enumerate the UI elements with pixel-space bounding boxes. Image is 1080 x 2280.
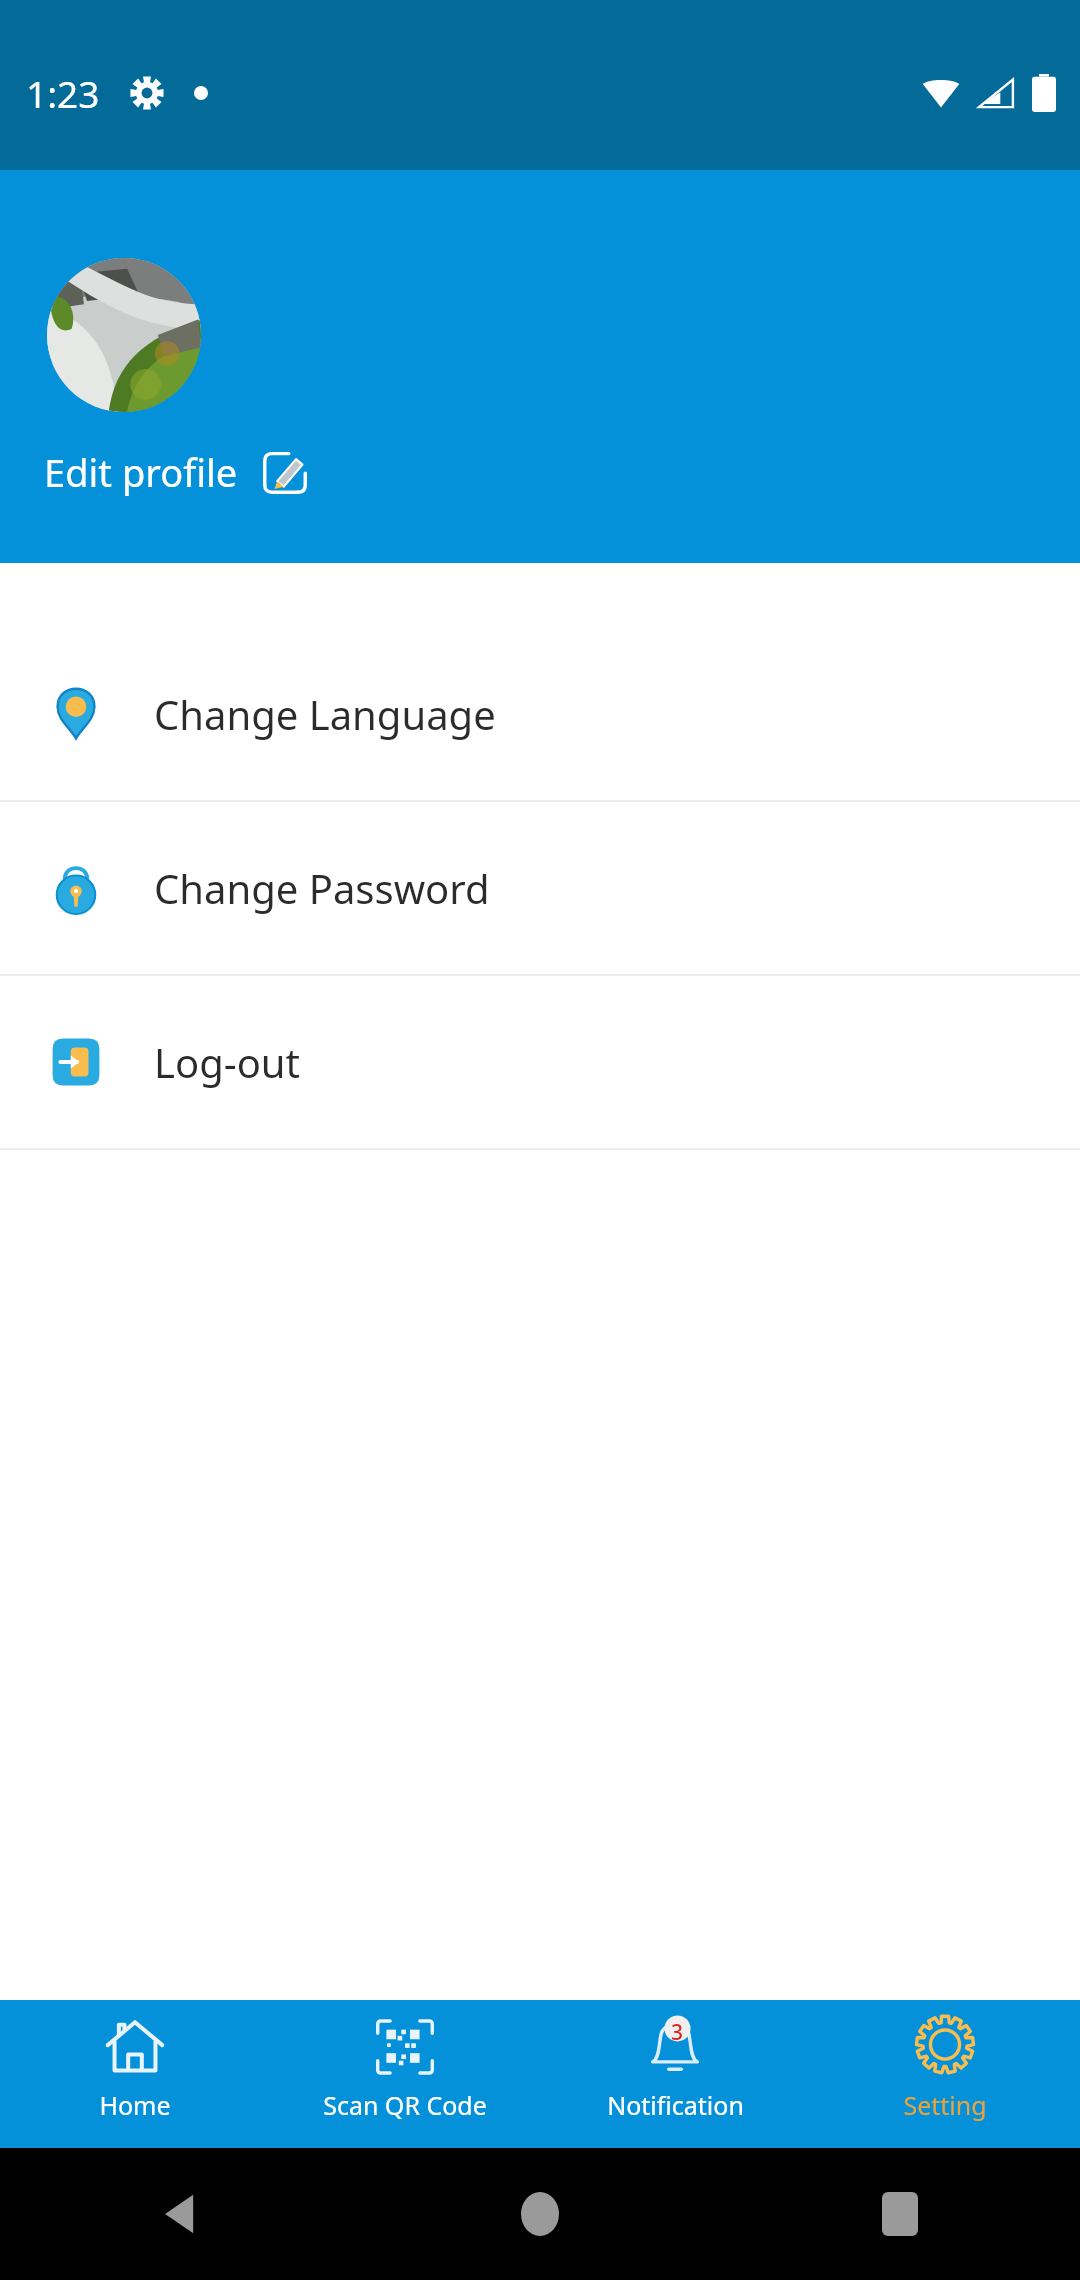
button[interactable]: Setting <box>810 2000 1080 2148</box>
button[interactable]: Recent apps <box>864 2178 936 2250</box>
button[interactable]: Log-out <box>0 976 1080 1148</box>
staticText: Edit profile <box>44 446 238 498</box>
other: Notification <box>644 2016 706 2078</box>
other: Scan QR Code <box>374 2016 436 2078</box>
staticText: Log-out <box>154 1035 300 1089</box>
button[interactable]: Back <box>144 2178 216 2250</box>
staticText: 3 <box>671 2018 684 2047</box>
staticText: Setting <box>903 2088 987 2122</box>
other: Setting <box>914 2016 976 2078</box>
staticText: 1:23 <box>26 68 100 118</box>
staticText: Change Password <box>154 861 490 915</box>
button[interactable]: Home <box>504 2178 576 2250</box>
staticText: Scan QR Code <box>323 2088 487 2122</box>
button[interactable]: Notification <box>540 2000 810 2148</box>
button[interactable]: Change Language <box>0 628 1080 800</box>
button[interactable]: Home <box>0 2000 270 2148</box>
other: Home <box>104 2016 166 2078</box>
button[interactable]: Change Password <box>0 802 1080 974</box>
button[interactable]: Edit profile <box>40 440 312 504</box>
staticText: Home <box>99 2088 171 2122</box>
staticText: Notification <box>607 2088 744 2122</box>
staticText: Change Language <box>154 687 496 741</box>
button[interactable]: Profile photo <box>47 258 201 412</box>
button[interactable]: Scan QR Code <box>270 2000 540 2148</box>
